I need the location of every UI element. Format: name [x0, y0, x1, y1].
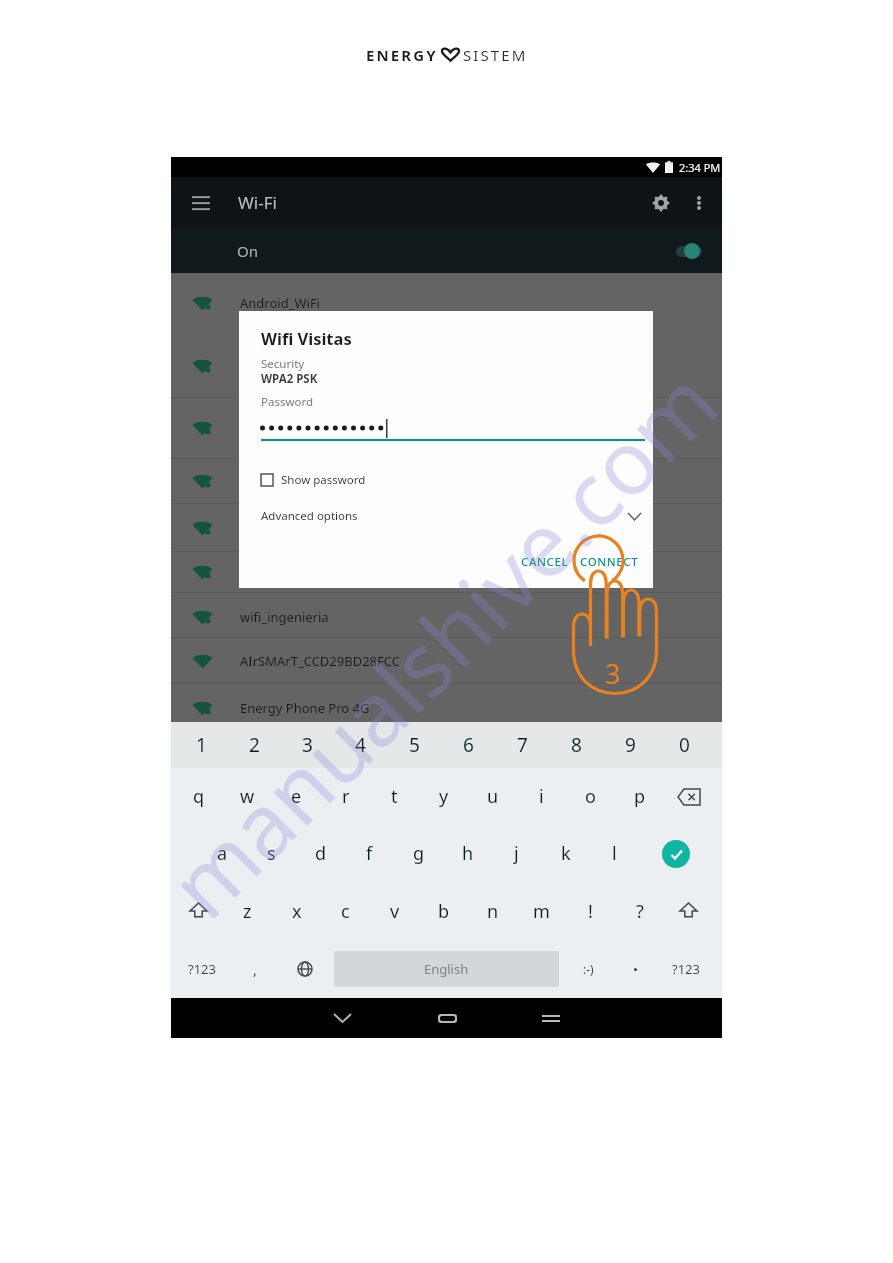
staticText: 2 [249, 732, 260, 758]
staticText: f [366, 841, 373, 866]
staticText: ENERGY [366, 45, 438, 65]
staticText: 3 [605, 655, 621, 692]
button[interactable]: Energy Phone Pro 4G [171, 686, 722, 730]
button[interactable]: g [394, 825, 443, 882]
button[interactable]: e [272, 768, 321, 825]
staticText: Advanced options [261, 508, 358, 524]
button[interactable]: 6 [441, 722, 495, 768]
staticText: z [243, 899, 252, 924]
button[interactable]: m [517, 882, 566, 940]
button[interactable]: v [370, 882, 419, 940]
button[interactable]: q [174, 768, 223, 825]
staticText: t [391, 784, 398, 809]
button[interactable]: Recents [530, 998, 572, 1038]
staticText: 2:34 PM [679, 160, 721, 175]
button[interactable]: c [321, 882, 370, 940]
button[interactable]: 0 [657, 722, 711, 768]
button[interactable] [171, 459, 722, 503]
button[interactable]: Advanced options [261, 508, 641, 524]
staticText: x [292, 899, 302, 924]
button[interactable]: On [171, 228, 722, 273]
button[interactable]: :-) [563, 940, 613, 998]
button[interactable]: h [443, 825, 492, 882]
button[interactable]: , [230, 940, 280, 998]
button[interactable] [613, 940, 658, 998]
button[interactable]: r [321, 768, 370, 825]
staticText: CANCEL [521, 554, 569, 570]
button[interactable]: More options [684, 188, 714, 218]
button[interactable]: 9 [603, 722, 657, 768]
staticText: k [561, 841, 571, 866]
button[interactable]: AIrSMArT_CCD29BD28FCC [171, 639, 722, 683]
button[interactable]: 5 [387, 722, 441, 768]
staticText: ?123 [672, 960, 700, 978]
button[interactable]: ?123 [174, 940, 230, 998]
button[interactable]: Backspace [664, 768, 713, 825]
button[interactable] [171, 550, 722, 594]
staticText: l [612, 841, 617, 866]
button[interactable]: t [370, 768, 419, 825]
staticText: manualshive.com [142, 343, 742, 943]
staticText: CONNECT [580, 554, 639, 570]
button[interactable]: x [272, 882, 321, 940]
staticText: 0 [679, 732, 690, 758]
button[interactable]: b [419, 882, 468, 940]
staticText: q [193, 784, 205, 809]
button[interactable]: Show password [261, 472, 366, 488]
staticText: 8 [571, 732, 582, 758]
button[interactable]: w [223, 768, 272, 825]
staticText: Wi-Fi [238, 191, 277, 214]
staticText: a [217, 841, 228, 866]
button[interactable]: y [419, 768, 468, 825]
button[interactable]: l [590, 825, 639, 882]
staticText: Energy Phone Pro 4G [240, 699, 370, 717]
button[interactable]: a [198, 825, 247, 882]
button[interactable]: 7 [495, 722, 549, 768]
button[interactable]: Language [280, 940, 330, 998]
button[interactable]: ! [566, 882, 615, 940]
button[interactable]: English [334, 951, 559, 987]
button[interactable]: k [541, 825, 590, 882]
button[interactable]: CANCEL [519, 549, 571, 575]
button[interactable] [171, 344, 722, 388]
button[interactable]: u [468, 768, 517, 825]
staticText: WPA2 PSK [261, 371, 318, 387]
staticText: Wifi Visitas [261, 327, 352, 349]
button[interactable]: Back [321, 998, 363, 1038]
staticText: n [487, 899, 499, 924]
button[interactable]: CONNECT [578, 549, 641, 575]
button[interactable]: 4 [334, 722, 387, 768]
button[interactable]: Android_WiFi [171, 281, 722, 325]
button[interactable]: Settings [638, 180, 684, 226]
staticText: 9 [625, 732, 636, 758]
button[interactable]: j [492, 825, 541, 882]
button[interactable]: ? [615, 882, 664, 940]
staticText: h [462, 841, 474, 866]
button[interactable]: z [223, 882, 272, 940]
button[interactable] [171, 406, 722, 450]
staticText: 5 [409, 732, 420, 758]
button[interactable]: p [615, 768, 664, 825]
button[interactable] [171, 506, 722, 550]
button[interactable]: Shift [174, 882, 223, 940]
staticText: i [539, 784, 544, 809]
button[interactable]: wifi_ingenieria [171, 595, 722, 639]
button[interactable]: 8 [549, 722, 603, 768]
button[interactable]: o [566, 768, 615, 825]
button[interactable]: d [296, 825, 345, 882]
button[interactable]: n [468, 882, 517, 940]
staticText: On [237, 241, 258, 261]
staticText: m [533, 899, 550, 924]
button[interactable]: i [517, 768, 566, 825]
button[interactable]: 1 [175, 722, 228, 768]
button[interactable]: 2 [228, 722, 281, 768]
button[interactable]: f [345, 825, 394, 882]
button[interactable]: Enter [639, 825, 713, 882]
button[interactable]: Menu [171, 177, 231, 228]
button[interactable]: 3 [281, 722, 334, 768]
button[interactable]: Home [426, 998, 468, 1038]
button[interactable]: s [247, 825, 296, 882]
button[interactable]: ?123 [658, 940, 713, 998]
button[interactable]: Shift [664, 882, 713, 940]
staticText: r [342, 784, 350, 809]
